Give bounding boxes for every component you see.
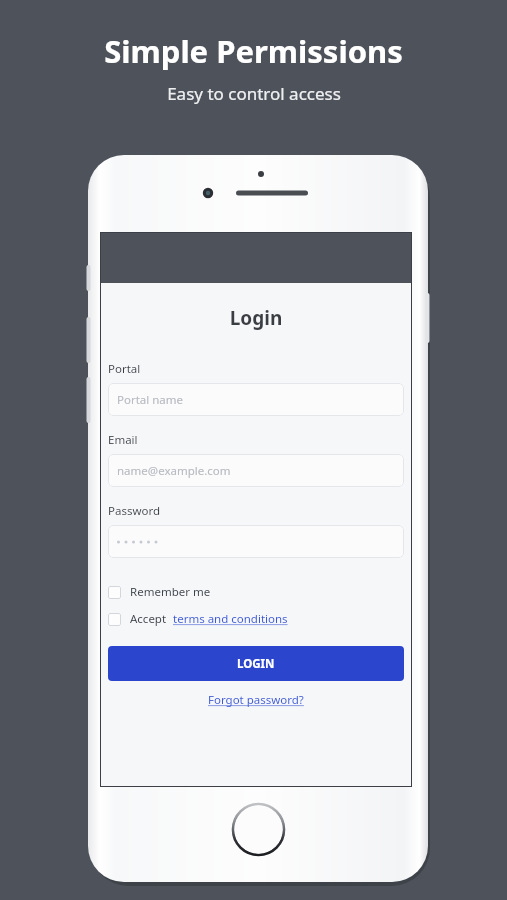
- button[interactable]: name@example.com: [108, 454, 404, 487]
- staticText: Accept: [130, 611, 167, 627]
- button[interactable]: terms and conditions: [173, 611, 288, 627]
- button[interactable]: Accept: [108, 609, 288, 629]
- button[interactable]: LOGIN: [108, 646, 404, 681]
- button[interactable]: Forgot password?: [208, 692, 304, 708]
- staticText: Login: [108, 305, 404, 331]
- staticText: Portal: [108, 361, 141, 377]
- button[interactable]: [108, 525, 404, 558]
- button[interactable]: Portal name: [108, 383, 404, 416]
- staticText: Portal name: [117, 392, 184, 408]
- button[interactable]: Home: [233, 804, 284, 855]
- staticText: LOGIN: [237, 656, 275, 672]
- staticText: Remember me: [130, 584, 211, 600]
- button[interactable]: Remember me: [108, 582, 211, 602]
- staticText: name@example.com: [117, 463, 231, 479]
- staticText: Password: [108, 503, 161, 519]
- staticText: Easy to control access: [167, 82, 341, 105]
- staticText: Simple Permissions: [104, 30, 403, 72]
- staticText: Email: [108, 432, 138, 448]
